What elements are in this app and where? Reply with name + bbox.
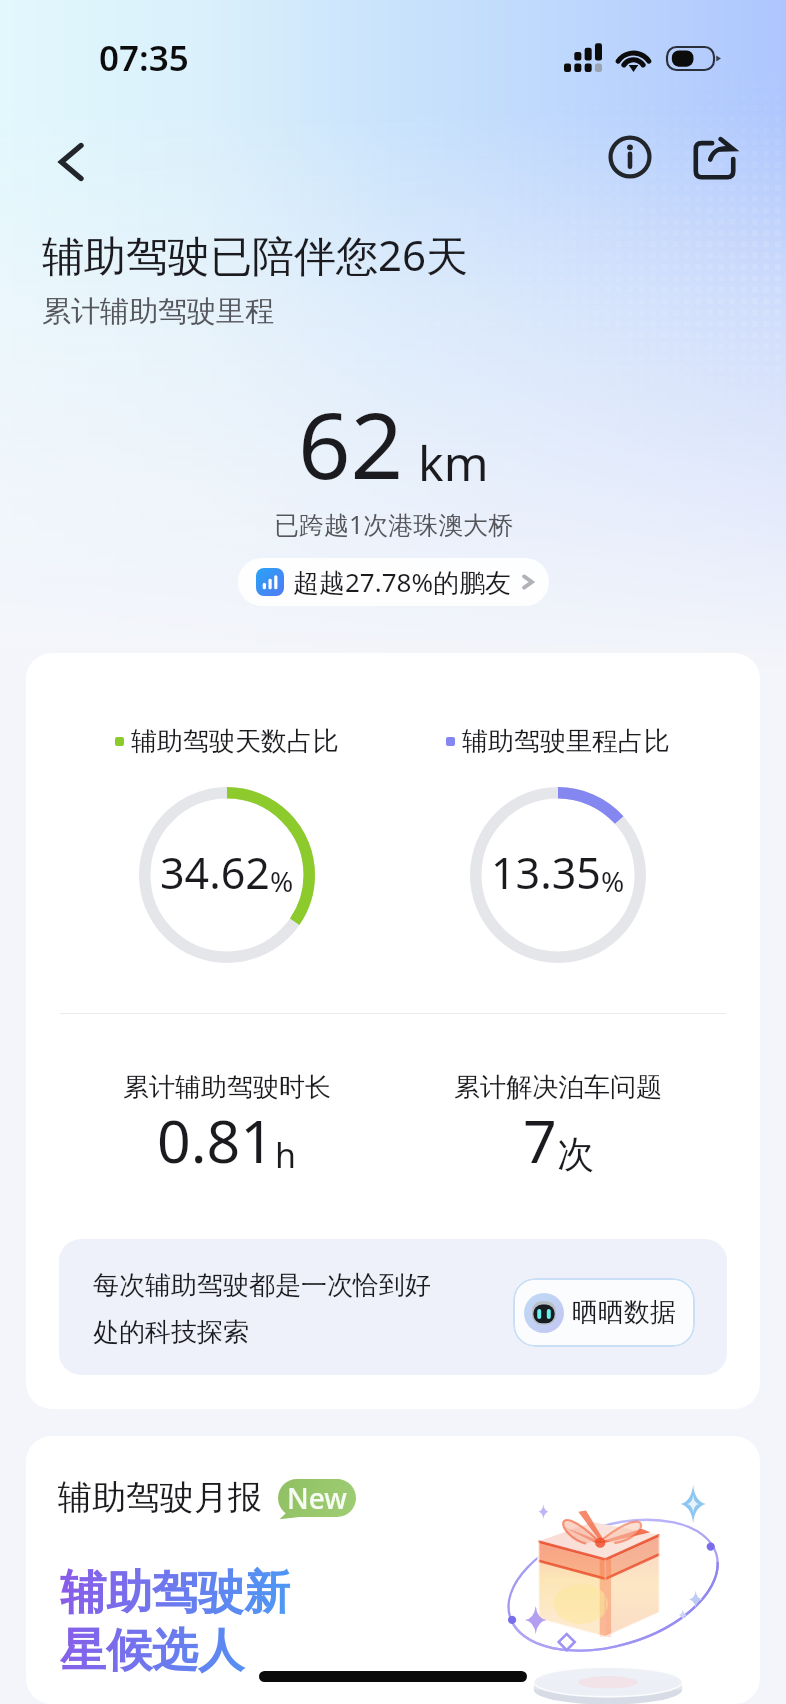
staticText: 13.35 — [491, 843, 601, 902]
staticText: 累计辅助驾驶时长 — [123, 1071, 331, 1104]
button[interactable]: Share — [691, 135, 739, 183]
staticText: 辅助驾驶天数占比 — [131, 725, 339, 758]
button[interactable]: 晒晒数据 — [513, 1278, 695, 1347]
staticText: 7 — [523, 1100, 557, 1180]
staticText: 07:35 — [99, 34, 189, 82]
staticText: 累计解决泊车问题 — [454, 1071, 662, 1104]
staticText: 0.81 — [157, 1100, 275, 1180]
button[interactable]: 超越27.78%的鹏友 — [238, 558, 549, 606]
staticText: 辅助驾驶已陪伴您26天 — [42, 226, 469, 283]
button[interactable]: Info — [606, 133, 654, 181]
staticText: 每次辅助驾驶都是一次恰到好 处的科技探索 — [93, 1269, 431, 1349]
staticText: 累计辅助驾驶里程 — [42, 293, 274, 330]
staticText: 晒晒数据 — [572, 1296, 676, 1329]
staticText: % — [270, 862, 294, 900]
staticText: 辅助驾驶月报 — [58, 1476, 262, 1519]
staticText: 次 — [557, 1131, 594, 1178]
staticText: 超越27.78%的鹏友 — [293, 564, 512, 600]
staticText: km — [418, 430, 489, 495]
staticText: h — [275, 1132, 297, 1178]
staticText: 辅助驾驶新 星候选人 — [60, 1564, 290, 1680]
staticText: 62 — [298, 381, 404, 506]
staticText: New — [287, 1479, 347, 1517]
staticText: 34.62 — [160, 843, 270, 902]
button[interactable]: Back — [46, 137, 96, 187]
staticText: 已跨越1次港珠澳大桥 — [274, 507, 514, 541]
staticText: 辅助驾驶里程占比 — [462, 725, 670, 758]
staticText: % — [601, 862, 625, 900]
